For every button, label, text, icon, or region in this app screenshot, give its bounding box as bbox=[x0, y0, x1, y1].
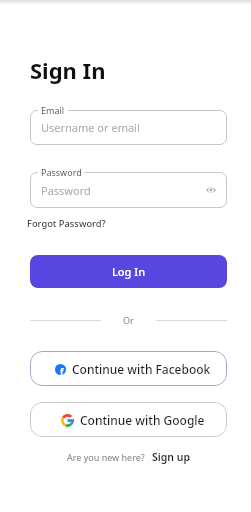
staticText: Are you new here? bbox=[67, 451, 145, 463]
staticText: Or bbox=[123, 314, 134, 326]
staticText: f bbox=[60, 365, 64, 375]
button[interactable]: f bbox=[30, 351, 227, 386]
button[interactable]: Log In bbox=[30, 255, 227, 288]
button[interactable]: Password bbox=[30, 172, 227, 208]
staticText: Continue with Facebook bbox=[72, 361, 211, 377]
staticText: Password bbox=[41, 183, 91, 198]
staticText: Sign In bbox=[30, 55, 106, 85]
staticText: Email bbox=[41, 104, 65, 116]
staticText: Continue with Google bbox=[80, 412, 205, 428]
staticText: Log In bbox=[112, 264, 146, 279]
staticText: Password bbox=[41, 166, 82, 178]
staticText: Username or email bbox=[41, 120, 140, 135]
button[interactable]: Forgot Password? bbox=[27, 217, 106, 230]
button[interactable]: Continue with Google bbox=[30, 402, 227, 437]
button[interactable]: Sign up bbox=[152, 450, 191, 464]
button[interactable]: Username or email bbox=[30, 110, 227, 145]
